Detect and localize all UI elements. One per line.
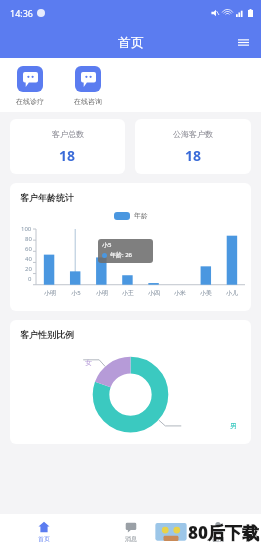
staticText: 客户性别比例 [20, 329, 74, 340]
button[interactable]: 在线咨询 [72, 66, 104, 106]
staticText: 小明 [44, 289, 56, 297]
staticText: 在线诊疗 [16, 97, 44, 106]
staticText: 小5 [71, 289, 81, 297]
button[interactable]: 消息 [87, 514, 174, 550]
staticText: 年龄 [134, 211, 148, 220]
staticText: 100 [21, 225, 32, 233]
staticText: 小明 [96, 289, 108, 297]
staticText: 公海客户数 [173, 129, 213, 139]
staticText: 40 [25, 255, 32, 263]
staticText: 年龄: 26 [110, 251, 133, 259]
staticText: 80 [25, 235, 32, 243]
staticText: 客户总数 [52, 129, 84, 139]
staticText: 0 [28, 275, 32, 283]
staticText: 20 [25, 265, 32, 273]
staticText: 18 [59, 146, 76, 165]
staticText: 首页 [118, 34, 144, 50]
button[interactable]: 在线诊疗 [14, 66, 46, 106]
button[interactable]: 公海客户数 [135, 119, 251, 174]
staticText: 小四 [148, 289, 160, 297]
staticText: 60 [25, 245, 32, 253]
staticText: 小儿 [226, 289, 238, 297]
button[interactable]: 客户总数 [10, 119, 125, 174]
button[interactable]: Menu [231, 30, 255, 54]
staticText: 男 [230, 421, 237, 430]
staticText: 在线咨询 [74, 97, 102, 106]
button[interactable]: 我的 [174, 514, 261, 550]
staticText: 小王 [122, 289, 134, 297]
staticText: 我的 [212, 535, 224, 543]
staticText: 客户年龄统计 [20, 192, 74, 203]
staticText: 80后下载 [188, 521, 259, 544]
staticText: 小美 [200, 289, 212, 297]
button[interactable]: 首页 [0, 514, 87, 550]
staticText: 18 [185, 146, 202, 165]
staticText: 14:36 [10, 7, 34, 19]
staticText: 小米 [174, 289, 186, 297]
staticText: 消息 [125, 535, 137, 543]
staticText: 首页 [38, 535, 50, 543]
staticText: 小5 [102, 241, 112, 249]
staticText: 女 [85, 358, 92, 367]
